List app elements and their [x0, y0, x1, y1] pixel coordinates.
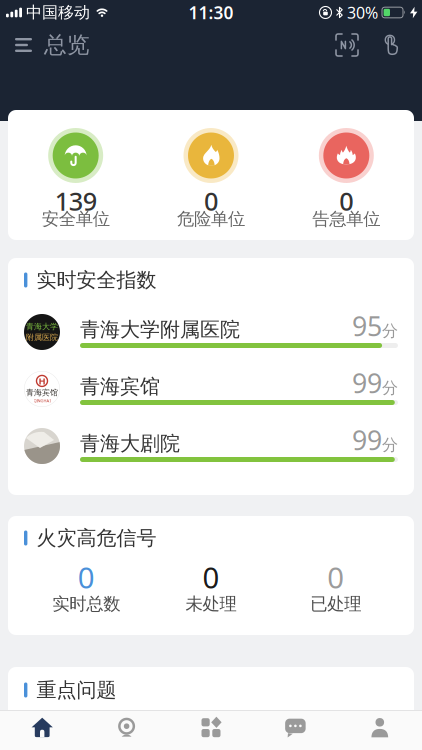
staticText: 附属医院	[26, 332, 58, 342]
staticText: 青海大学附属医院	[80, 317, 240, 342]
staticText: 总览	[44, 31, 90, 59]
staticText: 青海宾馆	[80, 374, 160, 399]
button[interactable]: 青海大剧院	[24, 428, 398, 464]
staticText: 0	[204, 184, 218, 218]
staticText: 分	[382, 435, 398, 455]
button[interactable]: 青海大学	[24, 314, 398, 350]
button[interactable]: 我的	[338, 716, 422, 740]
staticText: 安全单位	[42, 208, 110, 230]
staticText: 0	[327, 557, 344, 596]
staticText: 火灾高危信号	[36, 526, 156, 550]
button[interactable]: Menu	[0, 38, 44, 52]
staticText: 11:30	[188, 1, 233, 24]
staticText: 中国移动	[26, 3, 90, 22]
staticText: 告急单位	[312, 208, 380, 230]
staticText: 实时总数	[52, 593, 120, 615]
button[interactable]: 监控	[84, 716, 169, 740]
staticText: 0	[78, 557, 95, 596]
button[interactable]: H	[24, 371, 398, 407]
staticText: 0	[202, 557, 219, 596]
staticText: 已处理	[310, 593, 361, 615]
staticText: 分	[382, 321, 398, 341]
button[interactable]: Touch patrol	[380, 33, 422, 57]
button[interactable]: 首页	[0, 716, 84, 740]
staticText: 青海宾馆	[26, 388, 58, 397]
button[interactable]: NFC scan	[335, 33, 359, 57]
button[interactable]: 应用	[169, 716, 253, 740]
staticText: QINGHAI	[33, 398, 50, 403]
staticText: 30%	[347, 2, 378, 23]
staticText: 95	[352, 308, 382, 344]
staticText: 重点问题	[36, 678, 116, 702]
staticText: 分	[382, 378, 398, 398]
staticText: 0	[339, 184, 353, 218]
staticText: 青海大学	[26, 322, 58, 331]
staticText: 139	[55, 184, 97, 218]
staticText: H	[38, 375, 45, 387]
staticText: 危险单位	[177, 208, 245, 230]
staticText: 青海大剧院	[80, 431, 180, 456]
staticText: 99	[352, 422, 382, 458]
staticText: 99	[352, 365, 382, 401]
staticText: 未处理	[185, 593, 236, 615]
staticText: 实时安全指数	[36, 268, 156, 292]
button[interactable]: 消息	[253, 716, 338, 740]
